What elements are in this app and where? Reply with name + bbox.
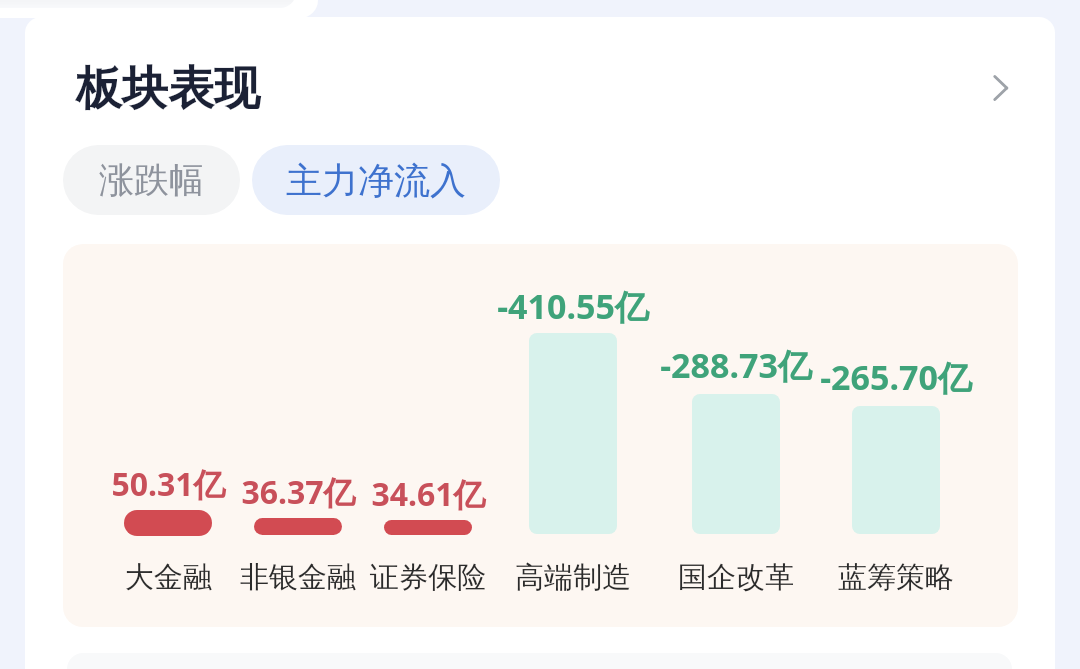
button[interactable] [364,270,492,595]
button[interactable] [104,270,232,595]
staticText: 36.37亿 [241,470,356,514]
staticText: 蓝筹策略 [838,559,954,596]
staticText: 大金融 [125,559,212,596]
staticText: -410.55亿 [497,283,649,329]
button[interactable] [234,270,362,595]
staticText: 34.61亿 [371,472,486,516]
button[interactable]: 主力净流入 [252,145,500,215]
staticText: -265.70亿 [820,354,972,400]
staticText: -288.73亿 [660,342,812,388]
button[interactable] [509,270,637,595]
staticText: 主力净流入 [286,158,466,203]
staticText: 涨跌幅 [99,158,204,202]
staticText: 50.31亿 [111,462,226,506]
button[interactable] [25,40,1053,130]
staticText: 国企改革 [678,559,794,596]
button[interactable]: 查看更多板块 [966,56,1030,120]
button[interactable] [832,270,960,595]
button[interactable]: 涨跌幅 [63,145,240,215]
staticText: 板块表现 [76,60,260,118]
staticText: 高端制造 [515,559,631,596]
button[interactable] [672,270,800,595]
staticText: 非银金融 [240,559,356,596]
staticText: 证券保险 [370,559,486,596]
